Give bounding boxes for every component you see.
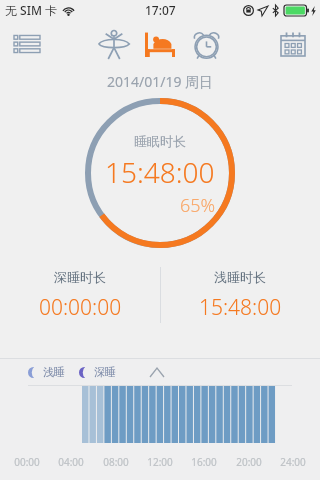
staticText: 08:00 xyxy=(103,455,129,469)
staticText: 00:00 xyxy=(14,455,40,469)
button[interactable]: List xyxy=(10,27,44,61)
staticText: 16:00 xyxy=(191,455,217,469)
button[interactable]: 深睡 xyxy=(79,365,116,379)
staticText: 无 SIM 卡 xyxy=(5,2,58,18)
staticText: 15:48:00 xyxy=(105,153,215,191)
button[interactable]: 浅睡时长 xyxy=(160,263,320,327)
staticText: 65% xyxy=(180,193,216,218)
staticText: 2014/01/19 周日 xyxy=(107,72,214,91)
button[interactable]: Activity xyxy=(92,22,136,66)
staticText: 04:00 xyxy=(58,455,84,469)
staticText: 浅睡 xyxy=(43,365,65,379)
button[interactable]: 深睡时长 xyxy=(0,263,160,327)
staticText: 20:00 xyxy=(236,455,262,469)
staticText: 15:48:00 xyxy=(199,293,282,322)
staticText: 深睡时长 xyxy=(54,269,106,285)
staticText: 浅睡时长 xyxy=(214,269,266,285)
staticText: 24:00 xyxy=(280,455,306,469)
button[interactable]: Calendar xyxy=(276,27,310,61)
button[interactable]: Alarm xyxy=(184,22,228,66)
button[interactable]: Sleep xyxy=(138,22,182,66)
button[interactable]: 浅睡 xyxy=(28,365,65,379)
staticText: 深睡 xyxy=(94,365,116,379)
staticText: 00:00:00 xyxy=(39,293,122,322)
staticText: 17:07 xyxy=(145,2,176,18)
staticText: 12:00 xyxy=(147,455,173,469)
staticText: 睡眠时长 xyxy=(134,133,186,149)
